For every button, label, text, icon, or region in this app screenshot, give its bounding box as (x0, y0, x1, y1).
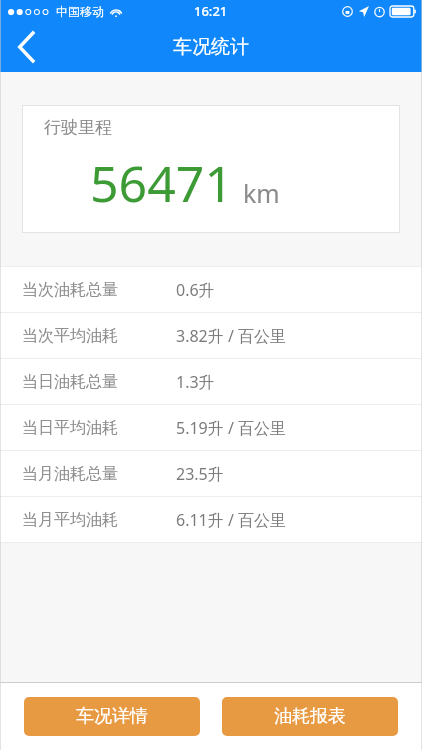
staticText: 5.19升 / 百公里 (176, 417, 287, 439)
staticText: 车况详情 (76, 705, 148, 728)
staticText: 1.3升 (176, 371, 215, 393)
button[interactable]: 行驶里程 (22, 105, 400, 233)
button[interactable]: Back (0, 22, 52, 72)
staticText: 当月油耗总量 (22, 464, 118, 484)
staticText: 当日油耗总量 (22, 372, 118, 392)
staticText: km (243, 176, 280, 210)
button[interactable]: 当日油耗总量 (0, 359, 422, 404)
staticText: 当月平均油耗 (22, 510, 118, 530)
staticText: 6.11升 / 百公里 (176, 509, 287, 531)
staticText: 油耗报表 (274, 705, 346, 728)
staticText: 16:21 (194, 2, 228, 20)
staticText: 中国移动 (56, 4, 104, 19)
button[interactable]: 当月平均油耗 (0, 497, 422, 542)
staticText: 当次油耗总量 (22, 280, 118, 300)
staticText: 23.5升 (176, 463, 224, 485)
staticText: 当日平均油耗 (22, 418, 118, 438)
staticText: 行驶里程 (44, 117, 112, 138)
staticText: 56471 (90, 149, 233, 217)
staticText: 当次平均油耗 (22, 326, 118, 346)
button[interactable]: 油耗报表 (222, 697, 398, 736)
button[interactable]: 当月油耗总量 (0, 451, 422, 496)
staticText: 车况统计 (173, 35, 249, 59)
button[interactable]: 当次油耗总量 (0, 267, 422, 312)
button[interactable]: 当日平均油耗 (0, 405, 422, 450)
button[interactable]: 当次平均油耗 (0, 313, 422, 358)
staticText: 3.82升 / 百公里 (176, 325, 287, 347)
staticText: 0.6升 (176, 279, 215, 301)
button[interactable]: 车况详情 (24, 697, 200, 736)
